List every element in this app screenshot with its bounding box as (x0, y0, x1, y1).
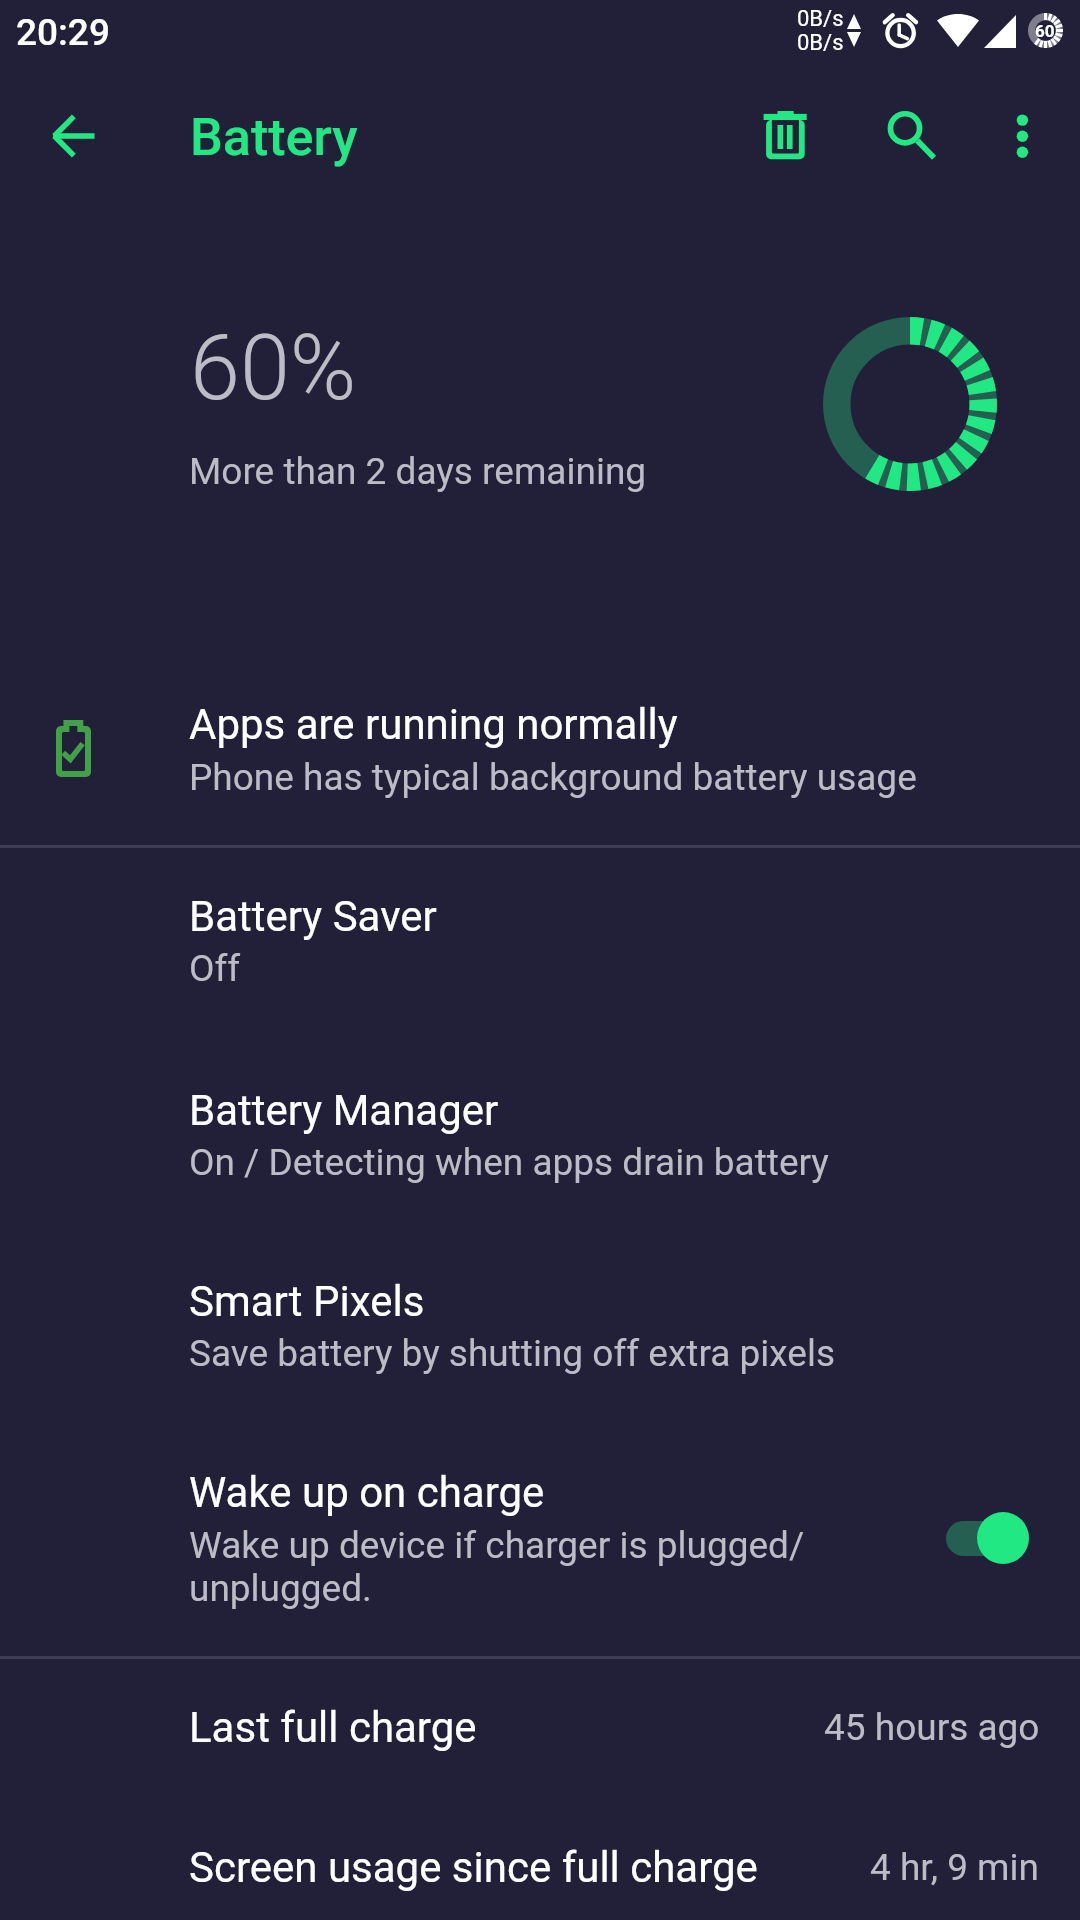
staticText: Off (189, 947, 241, 990)
staticText: Phone has typical background battery usa… (189, 756, 917, 799)
button[interactable]: Battery Manager (0, 1062, 1080, 1237)
staticText: Wake up device if charger is plugged/ un… (189, 1524, 805, 1610)
button[interactable]: Apps are running normally (0, 676, 1080, 826)
button[interactable]: Screen usage since full charge (0, 1821, 1080, 1920)
staticText: Last full charge (189, 1703, 477, 1752)
staticText: 4 hr, 9 min (870, 1846, 1039, 1889)
staticText: 20:29 (16, 11, 110, 54)
staticText: Battery Saver (189, 892, 437, 941)
staticText: 60 (1035, 21, 1055, 41)
button[interactable]: Last full charge (0, 1681, 1080, 1811)
staticText: Apps are running normally (189, 700, 678, 749)
staticText: More than 2 days remaining (189, 450, 647, 493)
button[interactable]: Wake up on charge (0, 1444, 1080, 1654)
staticText: Battery Manager (189, 1086, 499, 1135)
button[interactable]: Search (862, 90, 958, 186)
staticText: Save battery by shutting off extra pixel… (189, 1332, 836, 1375)
staticText: Wake up on charge (189, 1468, 545, 1517)
staticText: 0B/s (797, 30, 844, 56)
staticText: 0B/s (797, 6, 844, 32)
staticText: 45 hours ago (824, 1706, 1040, 1749)
staticText: 60% (190, 316, 357, 421)
staticText: On / Detecting when apps drain battery (189, 1141, 829, 1184)
button[interactable]: More options (974, 90, 1070, 186)
button[interactable]: Back (26, 90, 120, 184)
staticText: Battery (190, 107, 358, 168)
button[interactable]: Wake up on charge toggle (930, 1500, 1050, 1578)
button[interactable]: Battery Saver (0, 868, 1080, 1043)
button[interactable]: Smart Pixels (0, 1253, 1080, 1428)
staticText: Screen usage since full charge (189, 1843, 758, 1892)
staticText: Smart Pixels (189, 1277, 425, 1326)
button[interactable]: Delete (738, 90, 834, 186)
